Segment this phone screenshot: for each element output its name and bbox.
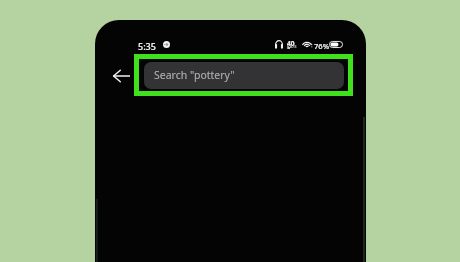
button[interactable]: Back (106, 61, 136, 91)
staticText: 401 (287, 39, 298, 49)
button[interactable]: Search "pottery" (144, 62, 344, 89)
staticText: 76% (314, 41, 330, 51)
staticText: KB/S (287, 44, 297, 50)
staticText: 5:35 (138, 40, 156, 52)
staticText: Search "pottery" (154, 68, 235, 82)
